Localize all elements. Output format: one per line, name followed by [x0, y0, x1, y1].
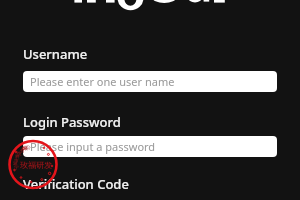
button[interactable]: Please input a password: [23, 136, 277, 157]
staticText: Login Password: [23, 113, 121, 131]
staticText: 波: [13, 161, 18, 167]
staticText: Verification Code: [23, 175, 129, 193]
staticText: Please input a password: [30, 139, 156, 154]
staticText: 有: [20, 148, 25, 154]
staticText: 公: [26, 145, 31, 151]
staticText: 科: [15, 154, 20, 160]
staticText: 市: [14, 158, 19, 164]
staticText: 玫福研发: [20, 160, 52, 170]
button[interactable]: Please enter one user name: [23, 71, 277, 92]
staticText: 技: [17, 151, 22, 157]
staticText: 限: [23, 146, 28, 152]
staticText: Please enter one user name: [30, 74, 175, 89]
staticText: 宁: [14, 165, 19, 171]
staticText: Username: [23, 45, 88, 63]
